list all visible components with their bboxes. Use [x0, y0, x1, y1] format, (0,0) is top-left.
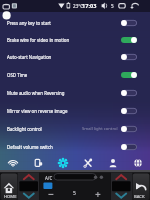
staticText: Small light control: [82, 126, 118, 132]
staticText: Brake wire for video in motion: [7, 37, 70, 43]
staticText: HOME: [4, 194, 17, 200]
button[interactable]: Backlight control: [0, 120, 150, 138]
button[interactable]: Default volume switch: [0, 138, 150, 156]
staticText: 23°C: [73, 3, 84, 9]
button[interactable]: Auto-start Navigation: [0, 48, 150, 66]
button[interactable]: [121, 90, 137, 96]
button[interactable]: Wi-Fi: [0, 156, 25, 170]
button[interactable]: Mirror view on reverse image: [0, 102, 150, 120]
staticText: Press any key to start: [7, 20, 51, 26]
button[interactable]: [121, 126, 137, 132]
staticText: Default volume switch: [7, 144, 53, 150]
button[interactable]: [121, 54, 137, 60]
button[interactable]: OSD Time: [0, 66, 150, 84]
button[interactable]: Screen mirror: [25, 156, 50, 170]
button[interactable]: Brake wire for video in motion: [0, 31, 150, 48]
staticText: 5: [73, 190, 76, 197]
button[interactable]: Browser: [125, 156, 150, 170]
staticText: Mute audio when Reversing: [7, 90, 65, 96]
button[interactable]: [121, 144, 137, 150]
staticText: 17:03: [82, 2, 97, 10]
button[interactable]: Settings: [50, 156, 75, 170]
staticText: A/C: [45, 175, 53, 181]
staticText: Mirror view on reverse image: [7, 108, 68, 114]
button[interactable]: Press any key to start: [0, 14, 150, 31]
staticText: OSD Time: [7, 72, 28, 78]
staticText: Auto-start Navigation: [7, 54, 52, 60]
button[interactable]: [121, 20, 137, 26]
button[interactable]: [121, 37, 137, 43]
button[interactable]: Account: [100, 156, 125, 170]
staticText: BACK: [134, 194, 145, 200]
button[interactable]: [121, 72, 137, 78]
staticText: Backlight control: [7, 126, 42, 132]
button[interactable]: [121, 108, 137, 114]
button[interactable]: Tools: [75, 156, 100, 170]
staticText: 5: [111, 3, 114, 9]
button[interactable]: Mute audio when Reversing: [0, 84, 150, 102]
